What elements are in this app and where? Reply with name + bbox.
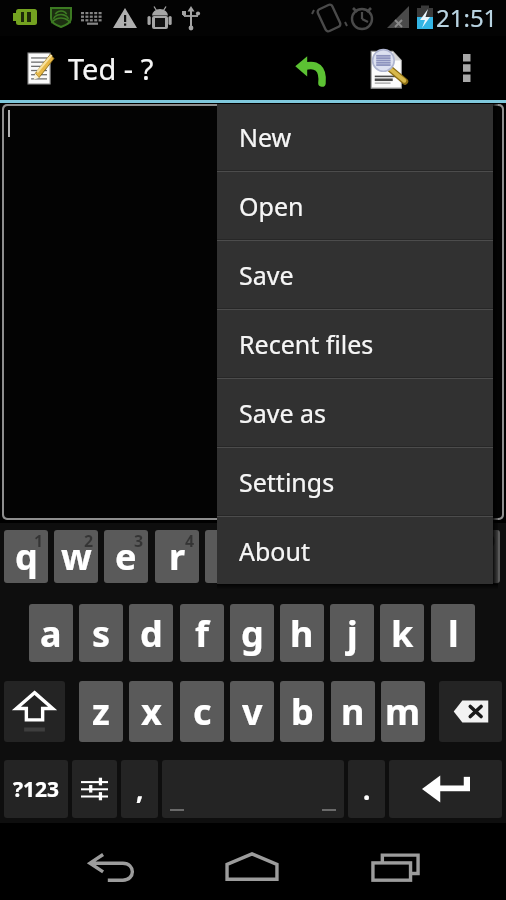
staticText: s bbox=[92, 609, 111, 658]
staticText: Recent files bbox=[239, 327, 374, 361]
button[interactable]: n bbox=[331, 681, 375, 742]
button[interactable]: s bbox=[79, 604, 123, 662]
button[interactable]: Home bbox=[201, 837, 302, 895]
staticText: q bbox=[15, 532, 38, 581]
button[interactable]: . bbox=[348, 760, 385, 818]
staticText: e bbox=[115, 532, 137, 581]
staticText: h bbox=[290, 609, 314, 658]
button[interactable]: u bbox=[305, 530, 349, 583]
staticText: z bbox=[92, 687, 110, 736]
staticText: w bbox=[61, 532, 92, 581]
staticText: 3 bbox=[134, 530, 144, 552]
staticText: r bbox=[169, 532, 186, 581]
button[interactable]: f bbox=[180, 604, 224, 662]
button[interactable]: e bbox=[104, 530, 148, 583]
staticText: 1 bbox=[34, 530, 44, 552]
staticText: Ted - ? bbox=[68, 49, 154, 88]
button[interactable] bbox=[72, 760, 117, 818]
button[interactable]: Recent files bbox=[217, 310, 493, 377]
button[interactable]: w bbox=[54, 530, 98, 583]
staticText: About bbox=[239, 534, 310, 568]
button[interactable] bbox=[389, 760, 502, 818]
staticText: 2 bbox=[84, 530, 94, 552]
button[interactable]: y bbox=[255, 530, 299, 583]
button[interactable]: , bbox=[121, 760, 158, 818]
button[interactable]: Undo bbox=[279, 36, 339, 100]
staticText: x bbox=[141, 687, 162, 736]
button[interactable]: Save bbox=[217, 241, 493, 308]
staticText: c bbox=[193, 687, 212, 736]
staticText: Open bbox=[239, 189, 304, 223]
staticText: y bbox=[267, 532, 288, 581]
button[interactable] bbox=[439, 681, 502, 742]
button[interactable] bbox=[4, 681, 65, 742]
button[interactable]: p bbox=[456, 530, 500, 583]
staticText: j bbox=[347, 609, 358, 658]
staticText: Settings bbox=[239, 465, 335, 499]
staticText: 4 bbox=[185, 530, 195, 552]
button[interactable]: Settings bbox=[217, 448, 493, 515]
staticText: 0 bbox=[486, 530, 496, 552]
button[interactable]: Recent apps bbox=[345, 838, 446, 896]
button[interactable]: d bbox=[129, 604, 173, 662]
button[interactable]: b bbox=[280, 681, 324, 742]
button[interactable]: k bbox=[380, 604, 424, 662]
button[interactable]: j bbox=[330, 604, 374, 662]
staticText: l bbox=[448, 609, 459, 658]
staticText: Save as bbox=[239, 396, 327, 430]
button[interactable]: Back bbox=[60, 838, 165, 896]
staticText: m bbox=[385, 687, 421, 736]
staticText: , bbox=[136, 772, 144, 807]
staticText: k bbox=[391, 609, 414, 658]
button[interactable]: h bbox=[280, 604, 324, 662]
staticText: v bbox=[242, 687, 263, 736]
button[interactable]: m bbox=[381, 681, 425, 742]
button[interactable]: c bbox=[180, 681, 224, 742]
staticText: 5 bbox=[235, 530, 245, 552]
staticText: d bbox=[140, 609, 163, 658]
button[interactable]: l bbox=[431, 604, 475, 662]
button[interactable]: Save as bbox=[217, 379, 493, 446]
staticText: . bbox=[363, 772, 371, 807]
staticText: New bbox=[239, 120, 292, 154]
staticText: 21:51 bbox=[436, 1, 498, 34]
button[interactable]: Open bbox=[217, 172, 493, 239]
button[interactable]: q bbox=[4, 530, 48, 583]
button[interactable]: Find bbox=[357, 36, 417, 100]
staticText: b bbox=[291, 687, 314, 736]
staticText: n bbox=[341, 687, 365, 736]
button[interactable]: r bbox=[155, 530, 199, 583]
staticText: Save bbox=[239, 258, 294, 292]
staticText: f bbox=[195, 609, 209, 658]
button[interactable]: v bbox=[230, 681, 274, 742]
button[interactable]: New bbox=[217, 104, 493, 170]
staticText: 6 bbox=[285, 530, 295, 552]
button[interactable]: About bbox=[217, 517, 493, 584]
button[interactable]: x bbox=[129, 681, 173, 742]
button[interactable]: More options bbox=[440, 36, 494, 100]
button[interactable] bbox=[162, 760, 344, 818]
staticText: g bbox=[241, 609, 264, 658]
button[interactable]: z bbox=[79, 681, 123, 742]
button[interactable]: g bbox=[230, 604, 274, 662]
staticText: ?123 bbox=[13, 775, 60, 804]
button[interactable]: ?123 bbox=[4, 760, 68, 818]
button[interactable]: t bbox=[205, 530, 249, 583]
button[interactable]: a bbox=[29, 604, 73, 662]
staticText: a bbox=[40, 609, 62, 658]
